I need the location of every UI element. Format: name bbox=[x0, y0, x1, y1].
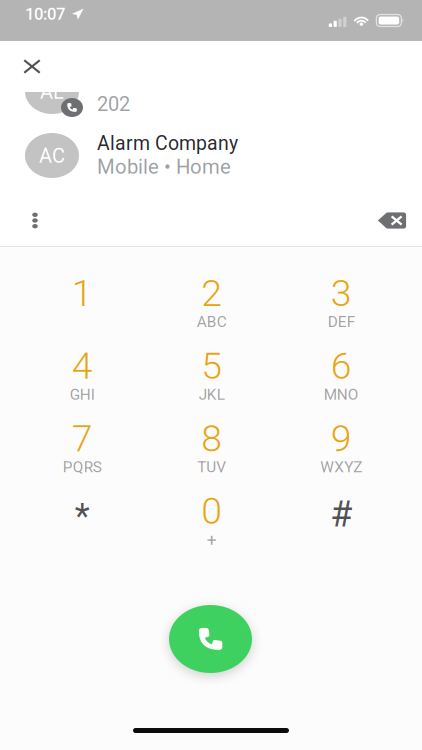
staticText: MNO bbox=[324, 385, 359, 403]
staticText: 9 bbox=[331, 417, 352, 460]
button[interactable]: AC bbox=[0, 124, 422, 186]
button[interactable]: 4 bbox=[17, 342, 147, 414]
staticText: 10:07 bbox=[25, 4, 65, 24]
staticText: + bbox=[207, 529, 217, 550]
button[interactable]: 6 bbox=[276, 342, 406, 414]
staticText: PQRS bbox=[63, 458, 102, 476]
staticText: 8 bbox=[201, 417, 222, 460]
button[interactable]: 0 bbox=[147, 487, 276, 559]
staticText: 6 bbox=[331, 344, 352, 388]
button[interactable]: 8 bbox=[147, 414, 276, 487]
staticText: # bbox=[330, 493, 352, 535]
button[interactable]: 2 bbox=[147, 269, 276, 342]
staticText: 3 bbox=[331, 271, 352, 315]
button[interactable]: Call bbox=[169, 605, 252, 673]
staticText: 5 bbox=[201, 344, 222, 388]
button[interactable]: # bbox=[276, 487, 406, 559]
staticText: 2 bbox=[201, 271, 222, 315]
button[interactable]: Backspace bbox=[367, 197, 417, 243]
staticText: AC bbox=[39, 144, 65, 168]
staticText: 7 bbox=[72, 417, 93, 460]
staticText: 1 bbox=[72, 271, 93, 315]
staticText: ABC bbox=[197, 313, 227, 331]
staticText: AL bbox=[40, 80, 64, 104]
staticText: 4 bbox=[72, 344, 93, 388]
button[interactable]: More options bbox=[12, 197, 58, 243]
staticText: Mobile • Home bbox=[97, 155, 231, 179]
staticText: JKL bbox=[199, 385, 225, 403]
button[interactable]: 9 bbox=[276, 414, 406, 487]
button[interactable]: 3 bbox=[276, 269, 406, 342]
button[interactable]: * bbox=[17, 487, 147, 559]
staticText: 0 bbox=[201, 489, 222, 533]
staticText: DEF bbox=[328, 313, 355, 331]
button[interactable]: AL bbox=[0, 92, 422, 118]
button[interactable]: Close bbox=[8, 42, 56, 90]
button[interactable]: 5 bbox=[147, 342, 276, 414]
staticText: TUV bbox=[197, 458, 226, 476]
staticText: * bbox=[75, 496, 90, 536]
staticText: Alarm Company bbox=[97, 132, 238, 155]
button[interactable]: 7 bbox=[17, 414, 147, 487]
staticText: 202 bbox=[97, 92, 130, 116]
staticText: GHI bbox=[70, 385, 95, 403]
staticText: WXYZ bbox=[320, 458, 362, 476]
button[interactable]: 1 bbox=[17, 269, 147, 342]
